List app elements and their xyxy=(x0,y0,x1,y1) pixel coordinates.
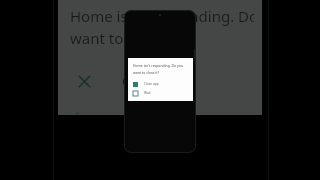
button[interactable]: Wait xyxy=(70,112,254,115)
staticText: Home isn't responding. Do you xyxy=(133,63,184,68)
staticText: Home isn't responding. Do you xyxy=(70,6,254,26)
staticText: Wait xyxy=(122,112,150,115)
other: Wait xyxy=(70,112,98,115)
staticText: Close app xyxy=(122,72,182,90)
button[interactable]: Wait xyxy=(133,89,189,97)
button[interactable]: Close app xyxy=(133,80,189,88)
staticText: want to close it? xyxy=(133,70,160,75)
other: Wait xyxy=(133,91,138,96)
staticText: Close app xyxy=(144,82,159,86)
button[interactable]: Close app xyxy=(70,64,254,98)
staticText: want to close it? xyxy=(70,28,183,48)
staticText: Wait xyxy=(144,91,151,95)
other: Close app xyxy=(70,67,98,95)
